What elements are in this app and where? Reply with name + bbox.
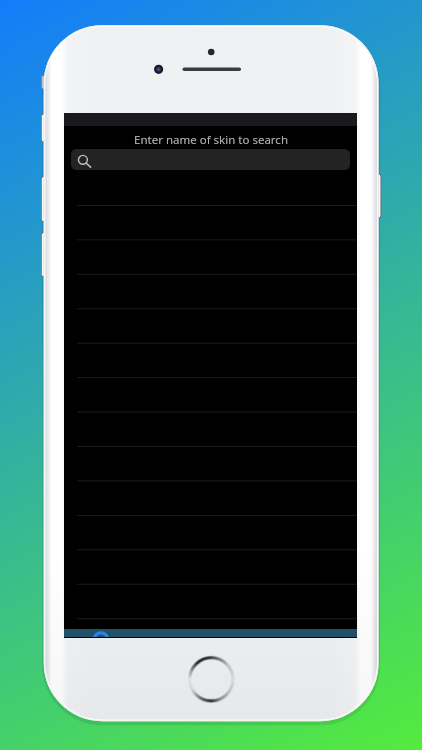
button[interactable]	[64, 510, 357, 544]
button[interactable]	[64, 476, 357, 510]
button[interactable]	[64, 272, 357, 306]
staticText: Enter name of skin to search	[134, 132, 288, 148]
button[interactable]	[64, 578, 357, 612]
button[interactable]: Search	[71, 149, 350, 170]
button[interactable]	[64, 374, 357, 408]
button[interactable]	[64, 544, 357, 578]
button[interactable]	[64, 442, 357, 476]
button[interactable]	[64, 306, 357, 340]
button[interactable]	[64, 408, 357, 442]
button[interactable]	[64, 238, 357, 272]
button[interactable]	[64, 340, 357, 374]
button[interactable]: Loading	[64, 629, 357, 637]
button[interactable]	[64, 204, 357, 238]
